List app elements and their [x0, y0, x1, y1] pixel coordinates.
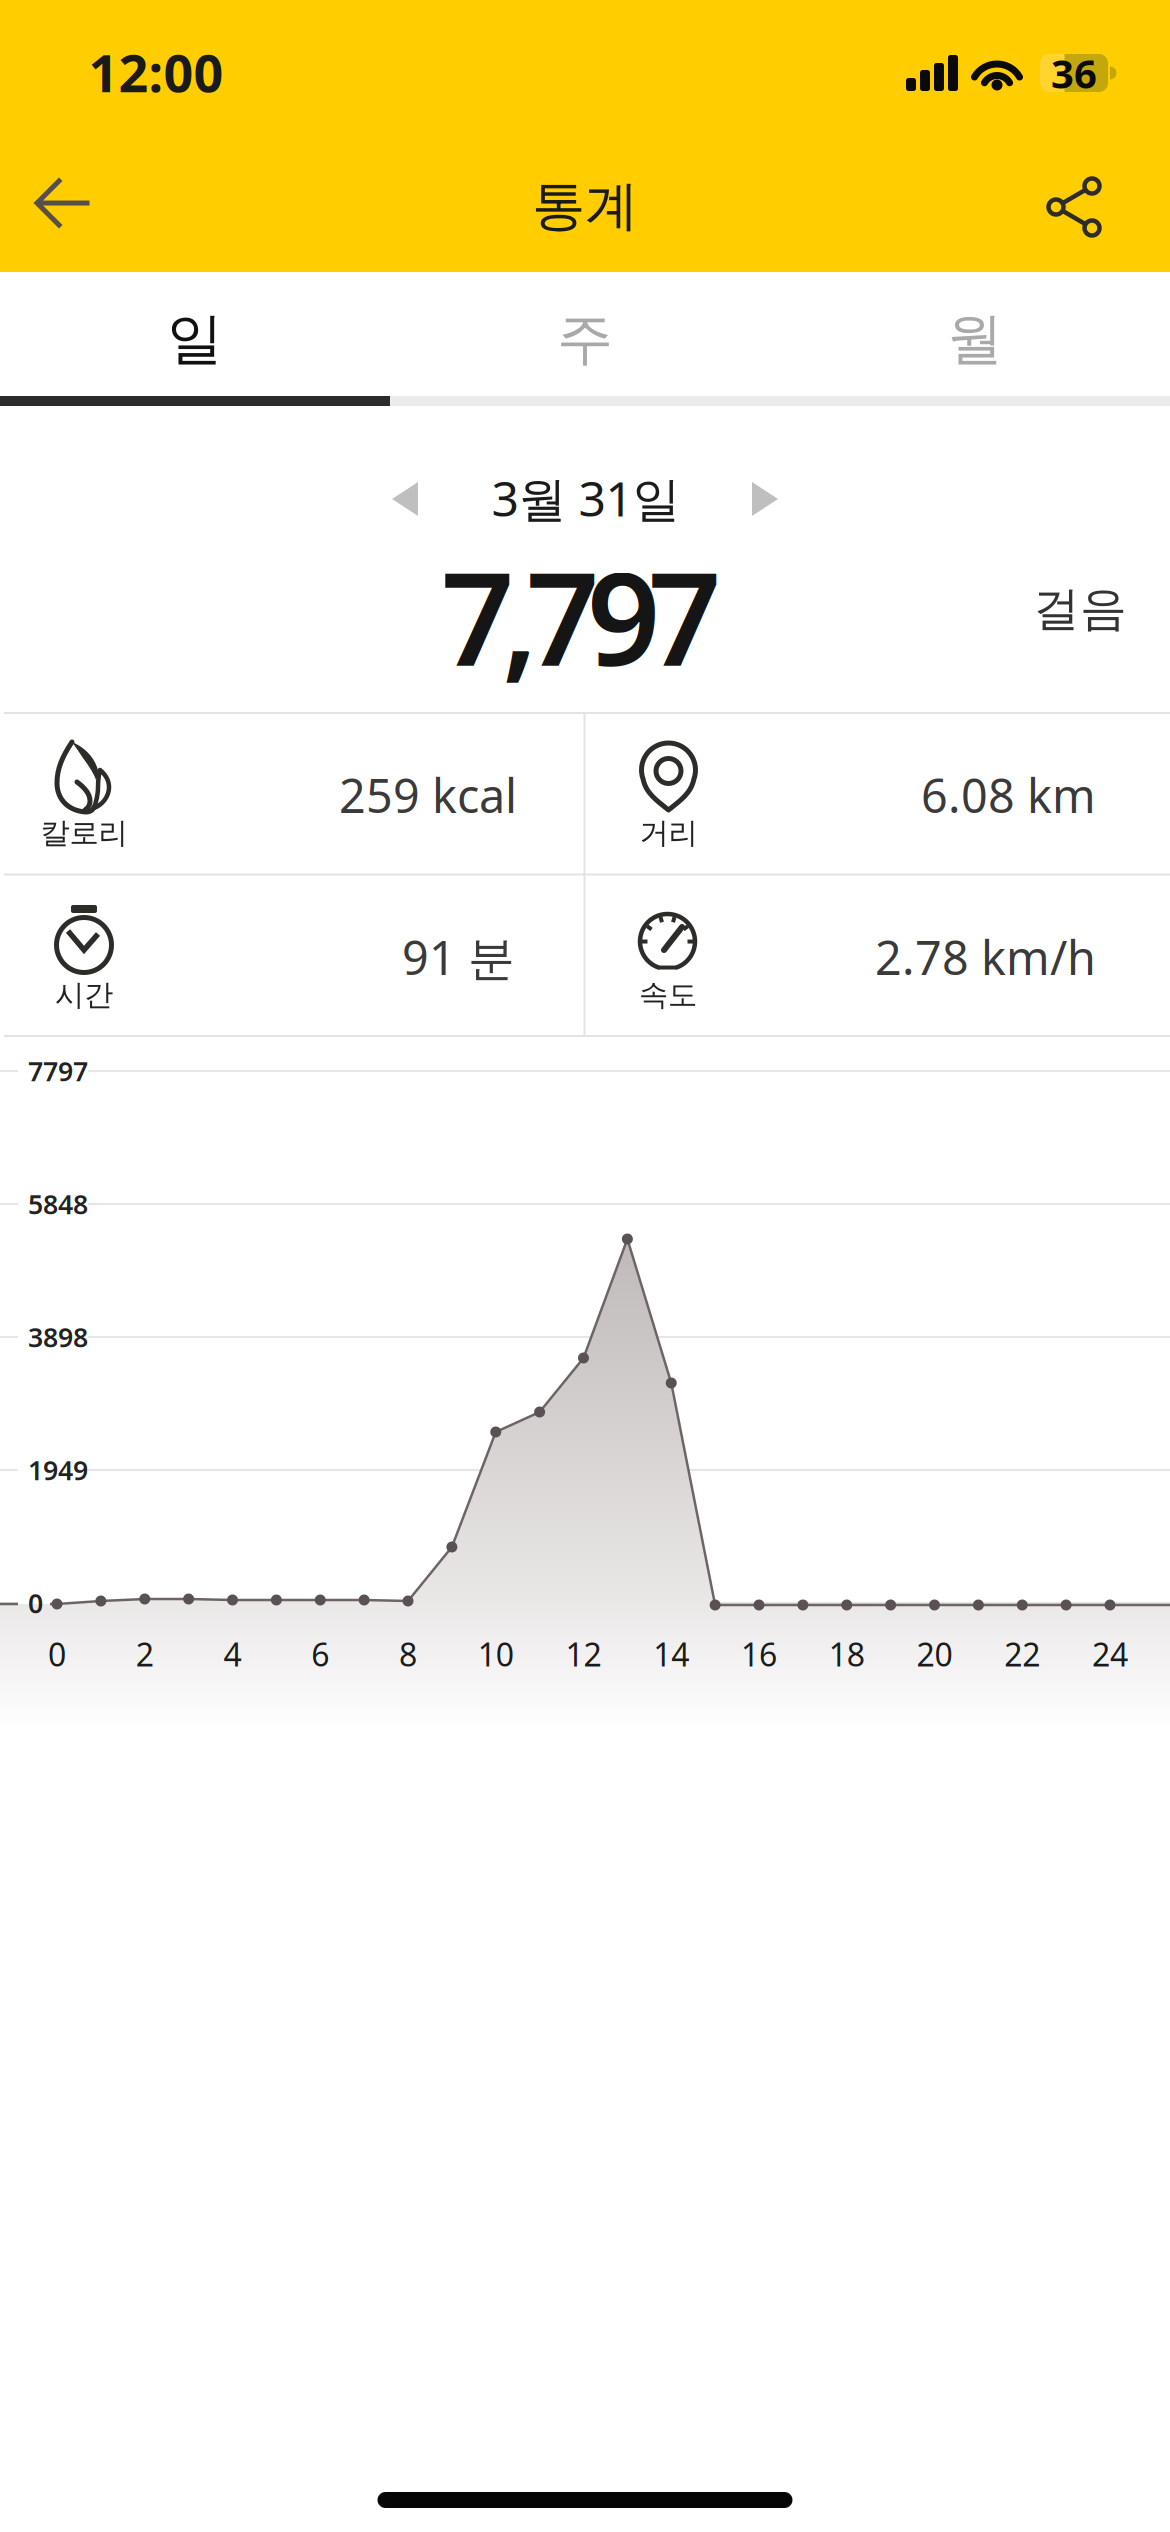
staticText: 3월 31일	[491, 466, 680, 530]
staticText: 91 분	[402, 926, 515, 988]
button[interactable]: Next day	[738, 471, 792, 525]
staticText: 속도	[639, 977, 697, 1013]
staticText: 칼로리	[40, 815, 127, 851]
staticText: 14	[653, 1633, 689, 1675]
staticText: 통계	[532, 173, 638, 239]
button[interactable]: 월	[780, 277, 1170, 401]
staticText: 16	[741, 1633, 777, 1675]
staticText: 5848	[28, 1186, 88, 1222]
button[interactable]: 일	[0, 277, 390, 401]
staticText: 걸음	[1033, 580, 1127, 638]
staticText: 거리	[639, 815, 697, 851]
button[interactable]: Back	[21, 158, 111, 248]
staticText: 1949	[28, 1452, 88, 1488]
staticText: 시간	[55, 977, 113, 1013]
button[interactable]: Previous day	[378, 471, 432, 525]
staticText: 10	[478, 1633, 514, 1675]
staticText: 7797	[28, 1053, 88, 1089]
staticText: 36	[1051, 46, 1097, 99]
staticText: 6.08 km	[921, 764, 1096, 826]
staticText: 0	[28, 1585, 43, 1621]
staticText: 12	[565, 1633, 601, 1675]
staticText: 3898	[28, 1319, 88, 1355]
staticText: 6	[311, 1633, 329, 1675]
staticText: 2.78 km/h	[875, 926, 1096, 988]
staticText: 주	[557, 305, 613, 373]
staticText: 2	[136, 1633, 154, 1675]
staticText: 20	[916, 1633, 952, 1675]
staticText: 18	[829, 1633, 865, 1675]
staticText: 4	[223, 1633, 241, 1675]
staticText: 일	[167, 305, 223, 373]
button[interactable]: 주	[390, 277, 780, 401]
staticText: 24	[1092, 1633, 1128, 1675]
staticText: 7,797	[441, 531, 721, 701]
staticText: 12:00	[88, 37, 223, 107]
staticText: 22	[1004, 1633, 1040, 1675]
button[interactable]: Share	[1029, 163, 1119, 253]
staticText: 259 kcal	[339, 764, 517, 826]
staticText: 0	[48, 1633, 66, 1675]
staticText: 월	[947, 305, 1003, 373]
staticText: 8	[399, 1633, 417, 1675]
